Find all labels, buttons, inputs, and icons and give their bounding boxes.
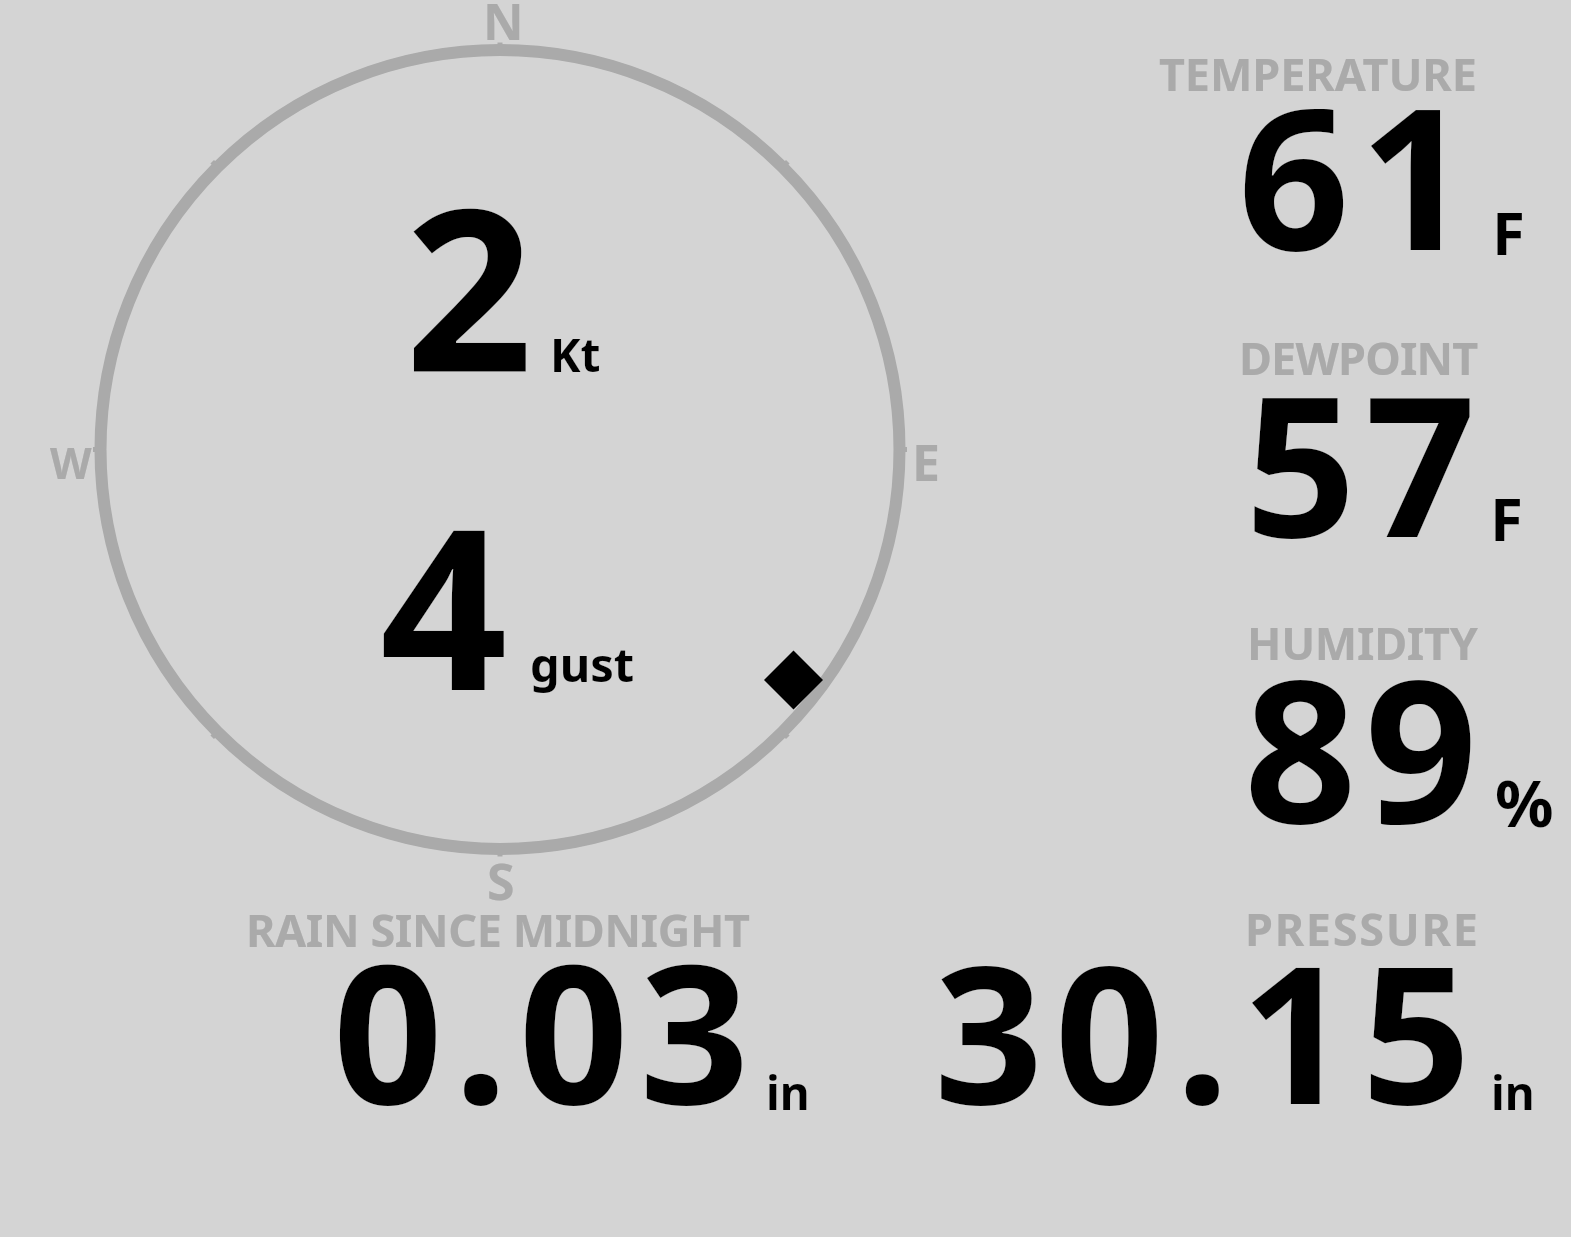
staticText: F (1492, 191, 1525, 273)
staticText: 61 (1238, 42, 1482, 308)
staticText: TEMPERATURE (1159, 43, 1477, 104)
staticText: RAIN SINCE MIDNIGHT (246, 899, 750, 960)
staticText: in (1491, 1061, 1535, 1124)
button[interactable]: Temperature 61 degrees Fahrenheit (1150, 45, 1570, 260)
staticText: W (50, 433, 92, 492)
button[interactable]: Wind 2 knots, gusting 4, from the south … (95, 40, 910, 860)
staticText: 89 (1244, 612, 1486, 880)
button[interactable]: Rain since midnight 0.03 inches (245, 905, 815, 1115)
button[interactable]: Pressure 30.15 inches of mercury (935, 905, 1545, 1115)
staticText: HUMIDITY (1247, 612, 1478, 673)
staticText: E (912, 428, 940, 496)
staticText: in (766, 1061, 810, 1124)
staticText: % (1495, 758, 1554, 847)
staticText: DEWPOINT (1239, 327, 1478, 388)
staticText: Kt (550, 323, 601, 386)
staticText: F (1490, 477, 1523, 559)
button[interactable]: Humidity 89 percent (1150, 615, 1570, 830)
staticText: 30.15 (934, 900, 1483, 1160)
staticText: gust (530, 632, 635, 696)
staticText: 0.03 (333, 899, 761, 1161)
staticText: S (487, 847, 515, 915)
staticText: 57 (1245, 330, 1485, 594)
button[interactable]: Dewpoint 57 degrees Fahrenheit (1150, 330, 1570, 545)
staticText: 4 (380, 452, 508, 756)
staticText: N (483, 0, 524, 55)
staticText: 2 (405, 132, 534, 437)
staticText: PRESSURE (1245, 898, 1480, 959)
